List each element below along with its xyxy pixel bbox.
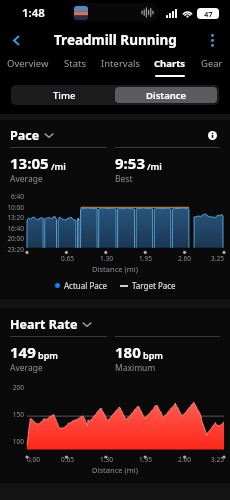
staticText: Distance (mi)	[0, 264, 230, 274]
button[interactable]: Heart Rate	[10, 316, 91, 333]
staticText: Maximum	[115, 362, 156, 374]
button[interactable]: More options	[202, 30, 222, 50]
staticText: 6:40	[2, 192, 24, 201]
staticText: 0.00	[27, 455, 48, 464]
staticText: 9:53	[115, 153, 145, 173]
staticText: Heart Rate	[10, 316, 78, 333]
button[interactable]: Gear	[199, 53, 225, 75]
staticText: 0.65	[48, 455, 87, 464]
staticText: Time	[53, 89, 76, 102]
staticText: 0.65	[48, 254, 87, 263]
staticText: Distance (mi)	[0, 465, 230, 475]
staticText: 200	[2, 383, 24, 392]
staticText: 180	[115, 342, 141, 362]
staticText: 10:00	[2, 203, 24, 212]
staticText: Pace	[10, 127, 40, 144]
staticText: Average	[10, 173, 43, 185]
staticText: bpm	[143, 349, 163, 361]
button[interactable]: Pace	[10, 127, 53, 144]
staticText: 13:05	[10, 153, 49, 173]
staticText: 16:40	[2, 224, 24, 233]
staticText: Overview	[7, 57, 49, 70]
staticText: Actual Pace	[64, 280, 108, 291]
staticText: Intervals	[101, 57, 140, 70]
staticText: 23:20	[2, 245, 24, 254]
staticText: 47	[204, 9, 213, 19]
staticText: Target Pace	[132, 280, 176, 291]
staticText: Distance	[146, 89, 187, 102]
staticText: 3.25	[204, 455, 224, 464]
staticText: Charts	[154, 57, 186, 70]
staticText: 2.60	[165, 254, 204, 263]
staticText: Average	[10, 362, 43, 374]
staticText: 1.30	[87, 254, 126, 263]
staticText: Treadmill Running	[54, 31, 177, 49]
staticText: 1.95	[126, 455, 165, 464]
staticText: Gear	[201, 57, 223, 70]
button[interactable]: Time	[13, 87, 115, 103]
button[interactable]: Back	[5, 29, 27, 51]
staticText: 3.25	[204, 254, 224, 263]
staticText: 149	[10, 342, 36, 362]
button[interactable]: Info	[204, 127, 220, 143]
button[interactable]: Charts	[152, 53, 188, 77]
staticText: 1.30	[87, 455, 126, 464]
button[interactable]: Intervals	[99, 53, 142, 75]
staticText: Best	[115, 173, 133, 185]
staticText: /mi	[147, 160, 162, 172]
staticText: 20:00	[2, 234, 24, 243]
staticText: 100	[2, 437, 24, 446]
button[interactable]: Stats	[62, 53, 88, 75]
staticText: bpm	[38, 349, 58, 361]
staticText: 1.95	[126, 254, 165, 263]
staticText: Stats	[64, 57, 86, 70]
staticText: 2.60	[165, 455, 204, 464]
staticText: 150	[2, 410, 24, 419]
button[interactable]: Overview	[5, 53, 51, 75]
staticText: 1:48	[22, 5, 45, 21]
staticText: /mi	[51, 160, 66, 172]
staticText: 13:20	[2, 213, 24, 222]
button[interactable]: Distance	[115, 87, 217, 103]
